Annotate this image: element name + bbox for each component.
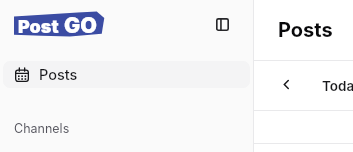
button[interactable]: Toggle sidebar [212, 14, 232, 34]
staticText: Post [18, 16, 59, 38]
button[interactable]: PostGO [14, 11, 105, 37]
button[interactable]: Posts [3, 61, 250, 88]
staticText: Today [322, 78, 353, 94]
staticText: Posts [39, 66, 78, 84]
staticText: Posts [278, 18, 333, 42]
staticText: Channels [14, 121, 70, 136]
staticText: GO [64, 12, 97, 38]
button[interactable]: Previous day [276, 74, 296, 94]
